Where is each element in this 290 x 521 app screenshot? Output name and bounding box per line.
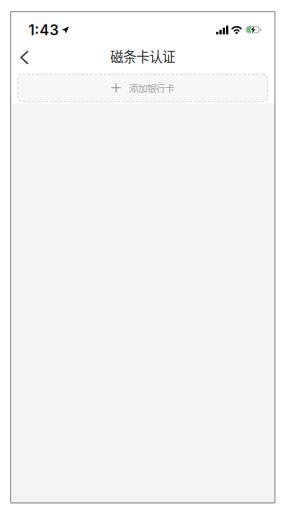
- staticText: 1:43: [28, 21, 58, 39]
- button[interactable]: Back: [10, 43, 36, 69]
- staticText: 添加银行卡: [129, 81, 174, 95]
- button[interactable]: 添加银行卡: [17, 73, 268, 102]
- staticText: 磁条卡认证: [110, 46, 175, 66]
